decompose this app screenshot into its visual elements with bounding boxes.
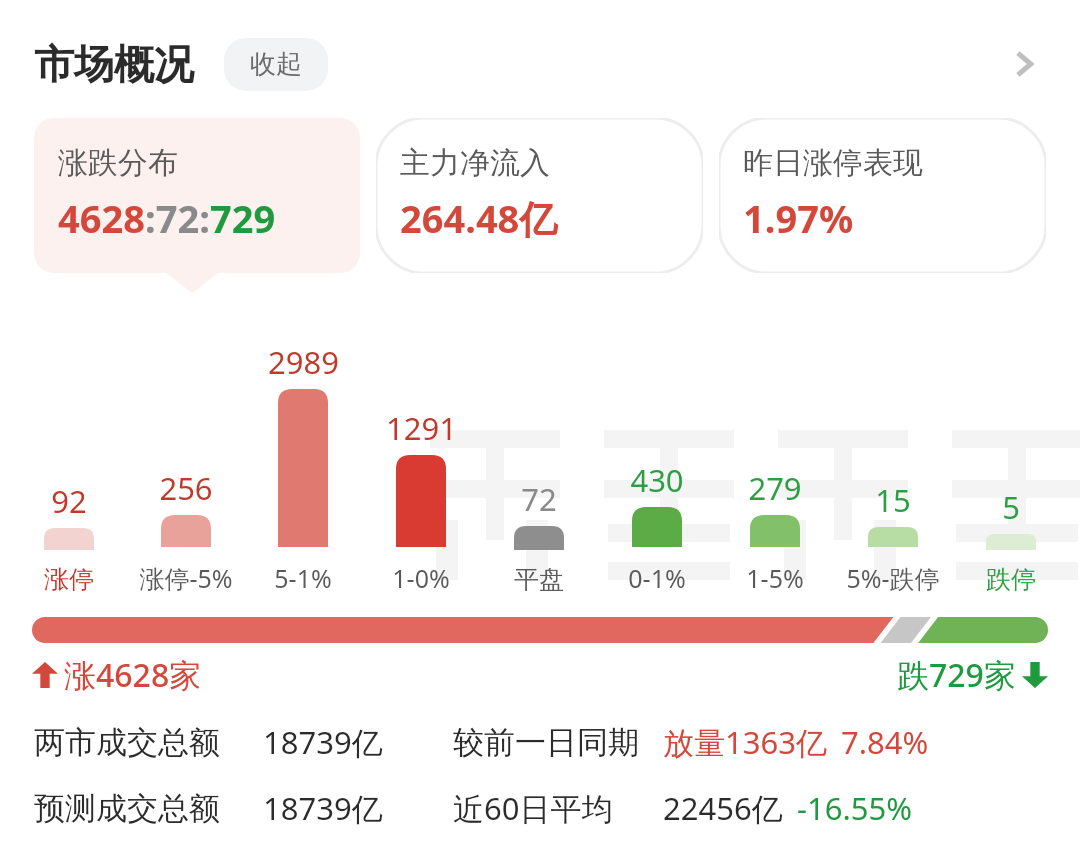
staticText: 4628	[58, 192, 145, 244]
staticText: :72:	[145, 192, 210, 244]
staticText: 1.97%	[743, 192, 854, 244]
staticText: 涨跌分布	[58, 144, 178, 182]
staticText: 跌停	[986, 564, 1036, 595]
staticText: 收起	[250, 48, 302, 81]
staticText: 22456亿	[663, 787, 783, 829]
staticText: -16.55%	[797, 787, 912, 829]
staticText: 1291	[386, 407, 457, 449]
staticText: 264.48亿	[400, 192, 558, 244]
staticText: 0-1%	[628, 561, 686, 595]
staticText: 1-0%	[392, 561, 450, 595]
staticText: 430	[630, 459, 684, 501]
staticText: 平盘	[514, 564, 564, 595]
staticText: 2989	[268, 341, 339, 383]
staticText: 跌729家	[897, 653, 1016, 697]
staticText: 1-5%	[746, 561, 804, 595]
staticText: 729	[210, 192, 276, 244]
button[interactable]: More	[996, 36, 1052, 92]
button[interactable]: 主力净流入	[376, 118, 703, 273]
staticText: 7.84%	[841, 721, 929, 763]
staticText: 5	[1002, 486, 1020, 528]
staticText: 主力净流入	[400, 144, 550, 182]
staticText: 18739亿	[263, 787, 383, 829]
staticText: 预测成交总额	[34, 789, 220, 828]
button[interactable]: 涨跌分布	[34, 118, 360, 273]
staticText: 两市成交总额	[34, 723, 220, 762]
staticText: 放量1363亿	[663, 721, 827, 763]
staticText: 涨4628家	[64, 653, 202, 697]
staticText: 涨停-5%	[139, 561, 233, 595]
staticText: 近60日平均	[453, 787, 613, 829]
staticText: 5%-跌停	[846, 561, 940, 595]
staticText: 涨停	[44, 564, 94, 595]
staticText: 昨日涨停表现	[743, 144, 923, 182]
staticText: 92	[51, 480, 87, 522]
staticText: 279	[748, 467, 802, 509]
staticText: 18739亿	[263, 721, 383, 763]
staticText: 市场概况	[34, 39, 194, 89]
button[interactable]: 收起	[224, 38, 328, 91]
staticText: 15	[875, 479, 911, 521]
staticText: 较前一日同期	[453, 723, 639, 762]
staticText: 5-1%	[274, 561, 332, 595]
button[interactable]: 昨日涨停表现	[719, 118, 1046, 273]
staticText: 256	[159, 467, 213, 509]
staticText: 72	[521, 478, 557, 520]
